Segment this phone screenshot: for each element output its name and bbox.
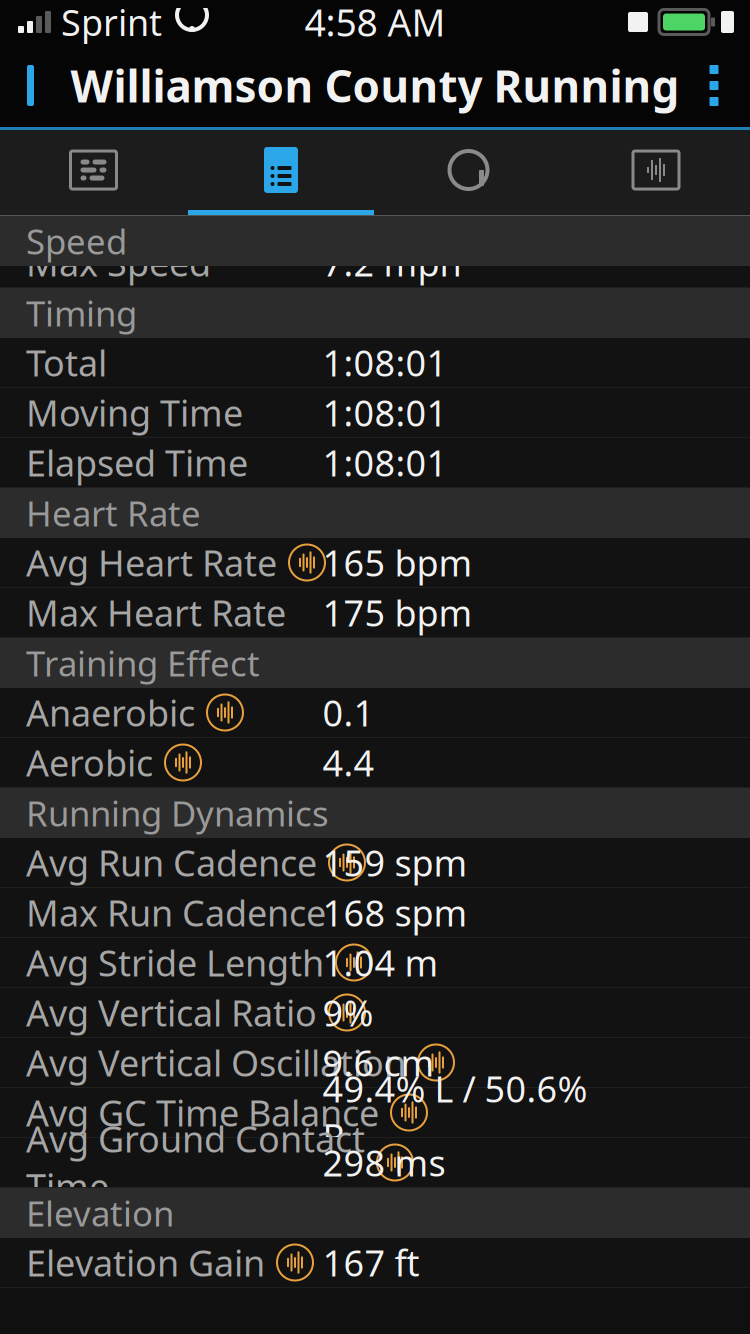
staticText: 49.4% L / 50.6% R: [322, 1065, 587, 1160]
button[interactable]: Back: [0, 50, 74, 120]
staticText: 159 spm: [322, 839, 467, 886]
staticText: 1.04 m: [322, 939, 438, 986]
staticText: Heart Rate: [26, 490, 201, 536]
staticText: Moving Time: [26, 389, 243, 436]
button[interactable]: Laps: [375, 130, 562, 215]
staticText: 165 bpm: [322, 539, 472, 586]
staticText: 0.1: [322, 689, 374, 736]
button[interactable]: Elapsed Time: [0, 438, 750, 488]
button[interactable]: Max Speed: [0, 238, 750, 288]
button[interactable]: Avg Moving Speed: [0, 188, 750, 238]
staticText: 1:08:01: [322, 439, 447, 486]
button[interactable]: Max Run Cadence: [0, 888, 750, 938]
button[interactable]: Avg Vertical Ratio: [0, 988, 750, 1038]
staticText: 175 bpm: [322, 589, 472, 636]
staticText: 298 ms: [322, 1139, 445, 1186]
staticText: Avg Moving Speed: [26, 189, 336, 236]
staticText: Sprint: [61, 0, 162, 46]
button[interactable]: Avg Ground Contact Time: [0, 1138, 750, 1188]
staticText: 9.6 cm: [322, 1039, 434, 1086]
button[interactable]: Total: [0, 338, 750, 388]
staticText: Total: [26, 339, 107, 386]
staticText: Max Run Cadence: [26, 889, 326, 936]
button[interactable]: Avg Stride Length: [0, 938, 750, 988]
staticText: Elevation: [26, 1190, 174, 1236]
staticText: Anaerobic: [26, 689, 195, 736]
staticText: Aerobic: [26, 739, 153, 786]
staticText: Running Dynamics: [26, 790, 329, 836]
button[interactable]: Elevation Gain: [0, 1238, 750, 1288]
staticText: 167 ft: [322, 1239, 419, 1286]
staticText: Training Effect: [26, 640, 260, 686]
button[interactable]: More options: [678, 50, 750, 120]
staticText: Avg Vertical Oscillation: [26, 1039, 406, 1086]
button[interactable]: Avg Run Cadence: [0, 838, 750, 888]
button[interactable]: Avg Vertical Oscillation: [0, 1038, 750, 1088]
staticText: Speed: [26, 218, 127, 264]
staticText: 1:08:01: [322, 339, 447, 386]
staticText: Avg Run Cadence: [26, 839, 317, 886]
button[interactable]: Details: [187, 130, 375, 215]
staticText: 7.2 mph: [322, 239, 461, 286]
button[interactable]: Avg Heart Rate: [0, 538, 750, 588]
button[interactable]: Moving Time: [0, 388, 750, 438]
staticText: Avg Stride Length: [26, 939, 324, 986]
button[interactable]: Charts: [562, 130, 750, 215]
staticText: 1:08:01: [322, 389, 447, 436]
staticText: Timing: [26, 290, 137, 336]
staticText: 168 spm: [322, 889, 467, 936]
staticText: Avg Heart Rate: [26, 539, 277, 586]
button[interactable]: Anaerobic: [0, 688, 750, 738]
button[interactable]: Avg GC Time Balance: [0, 1088, 750, 1138]
staticText: 6.2 mph: [322, 189, 461, 236]
staticText: Elapsed Time: [26, 439, 248, 486]
staticText: Williamson County Running: [70, 56, 679, 115]
button[interactable]: Aerobic: [0, 738, 750, 788]
staticText: Avg Vertical Ratio: [26, 989, 317, 1036]
staticText: Max Heart Rate: [26, 589, 286, 636]
button[interactable]: Map: [0, 130, 187, 215]
staticText: Elevation Gain: [26, 1239, 265, 1286]
button[interactable]: Max Heart Rate: [0, 588, 750, 638]
staticText: Avg Ground Contact Time: [26, 1115, 365, 1210]
staticText: 4.4: [322, 739, 374, 786]
staticText: Avg GC Time Balance: [26, 1089, 379, 1136]
staticText: 4:58 AM: [304, 0, 445, 47]
staticText: Max Speed: [26, 239, 211, 286]
staticText: 9%: [322, 989, 373, 1036]
